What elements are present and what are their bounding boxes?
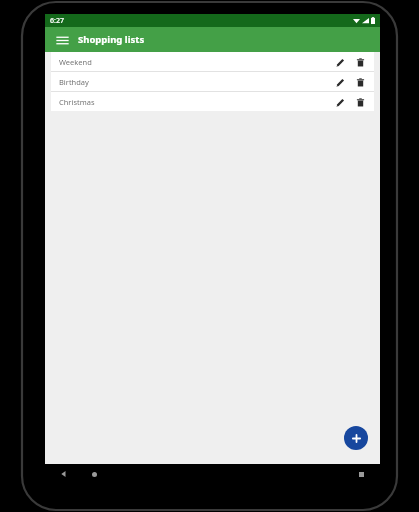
staticText: 6:27 (50, 16, 64, 26)
button[interactable]: Delete Weekend (351, 53, 369, 71)
staticText: Christmas (59, 97, 95, 107)
button[interactable]: Back (56, 466, 72, 482)
staticText: Birthday (59, 77, 89, 87)
button[interactable]: Delete Christmas (351, 93, 369, 111)
staticText: Shopping lists (78, 33, 145, 46)
button[interactable]: Home (86, 466, 102, 482)
button[interactable]: Delete Birthday (351, 73, 369, 91)
button[interactable]: Add shopping list (344, 426, 368, 450)
button[interactable]: Open navigation drawer (53, 31, 71, 49)
button[interactable]: Weekend (51, 52, 374, 71)
button[interactable]: Edit Weekend (331, 53, 349, 71)
button[interactable]: Edit Christmas (331, 93, 349, 111)
staticText: Weekend (59, 57, 92, 67)
button[interactable]: Birthday (51, 72, 374, 91)
button[interactable]: Christmas (51, 92, 374, 111)
button[interactable]: Edit Birthday (331, 73, 349, 91)
button[interactable]: Recent apps (353, 466, 369, 482)
